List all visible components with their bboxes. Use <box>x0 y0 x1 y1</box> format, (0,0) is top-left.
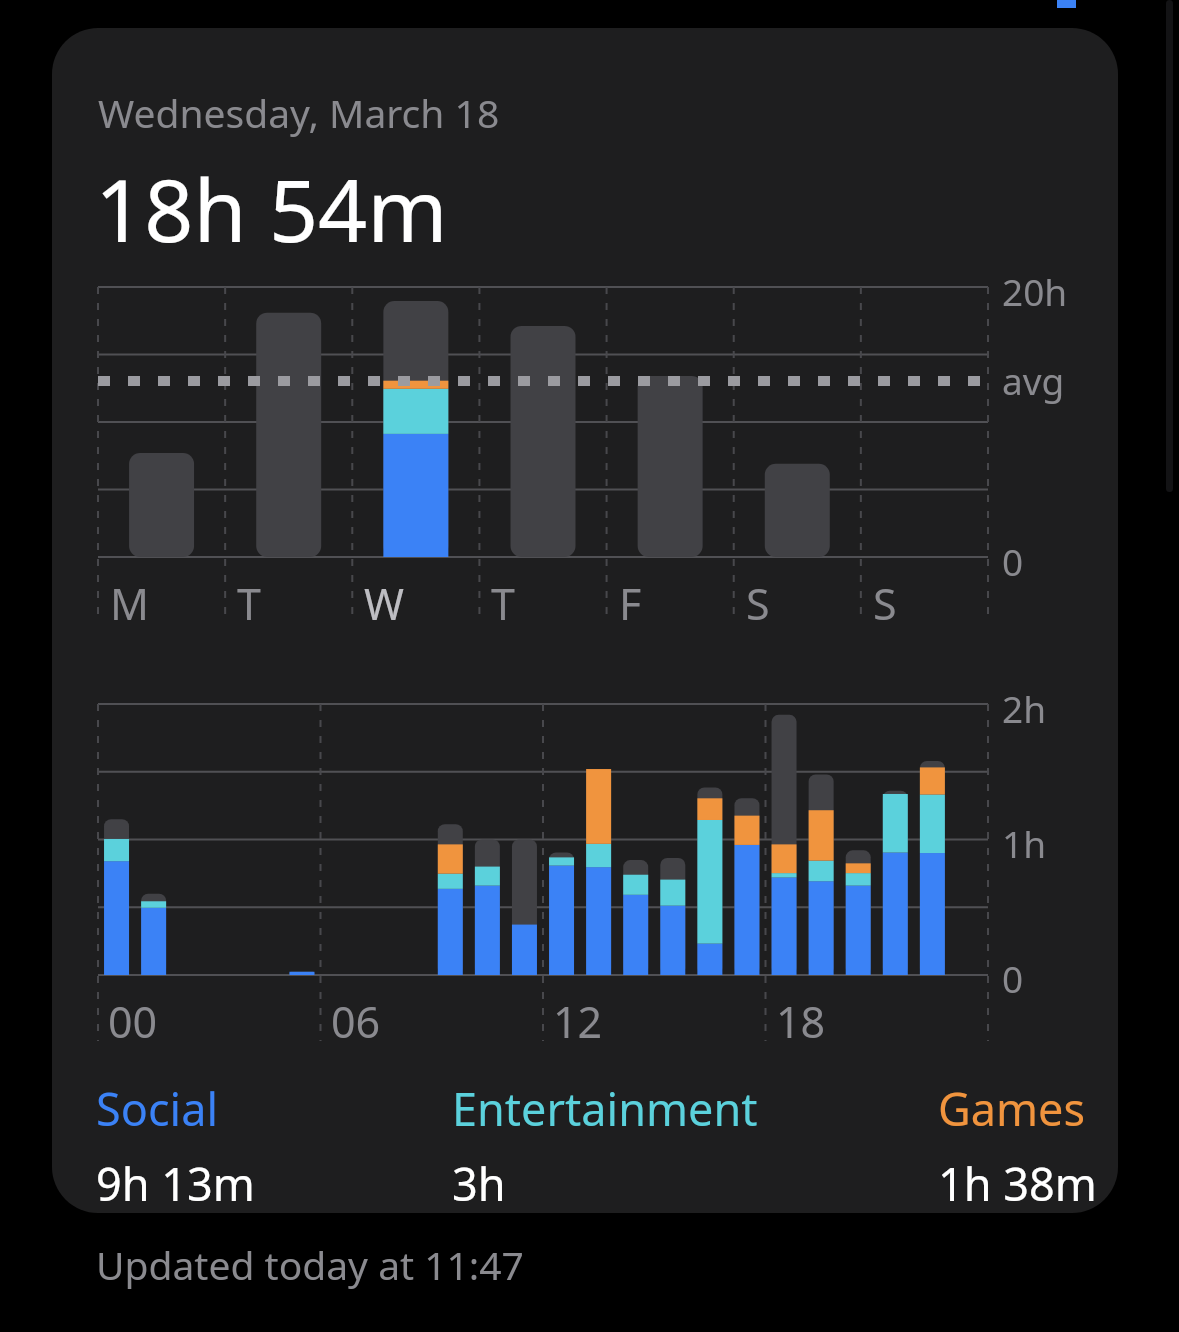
button[interactable]: Wednesday, March 18 <box>52 28 1118 1213</box>
staticText: avg <box>1002 355 1065 405</box>
staticText: Updated today at 11:47 <box>96 1238 524 1291</box>
staticText: 20h <box>1002 266 1068 316</box>
staticText: W <box>364 574 404 633</box>
staticText: 9h 13m <box>96 1153 255 1213</box>
staticText: 00 <box>108 992 158 1051</box>
staticText: S <box>873 574 897 633</box>
button[interactable]: Social <box>96 1078 255 1213</box>
staticText: 18 <box>776 992 826 1051</box>
staticText: 06 <box>331 992 381 1051</box>
staticText: Social <box>96 1078 218 1139</box>
staticText: S <box>746 574 770 633</box>
staticText: T <box>237 574 261 633</box>
staticText: 0 <box>1002 953 1024 1003</box>
staticText: 12 <box>553 992 603 1051</box>
staticText: 18h 54m <box>95 150 448 267</box>
staticText: 2h <box>1002 683 1047 733</box>
button[interactable]: Entertainment <box>452 1078 758 1213</box>
staticText: T <box>491 574 515 633</box>
staticText: 3h <box>452 1153 506 1213</box>
staticText: F <box>619 574 642 633</box>
staticText: 0 <box>1002 536 1024 586</box>
staticText: M <box>110 574 150 633</box>
staticText: Games <box>938 1078 1086 1139</box>
staticText: 1h <box>1002 818 1047 868</box>
staticText: 1h 38m <box>938 1153 1097 1213</box>
button[interactable]: Games <box>938 1078 1097 1213</box>
staticText: Entertainment <box>452 1078 758 1139</box>
staticText: Wednesday, March 18 <box>98 86 500 139</box>
